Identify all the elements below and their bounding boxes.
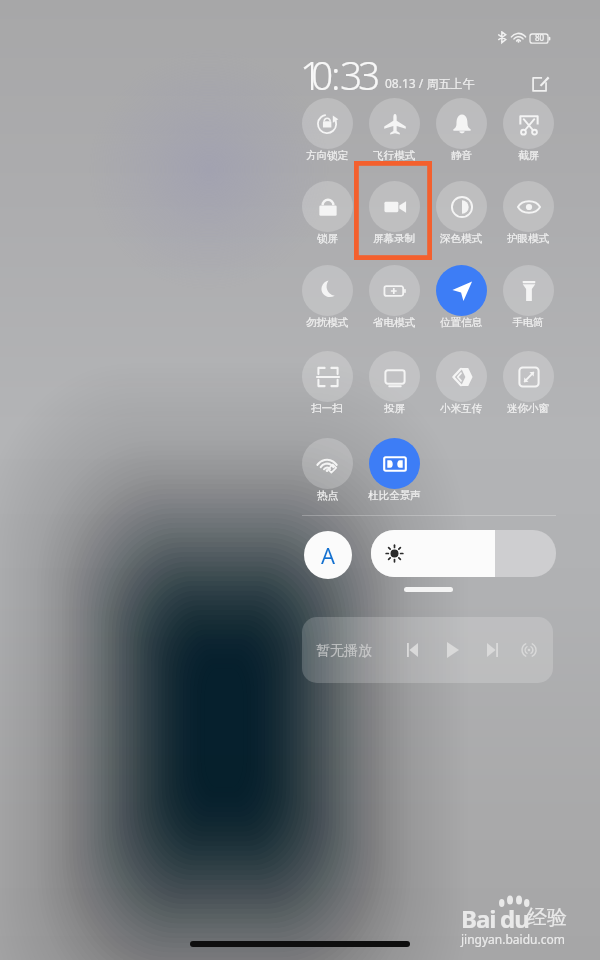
- staticText: 截屏: [518, 149, 539, 162]
- button[interactable]: [371, 530, 556, 577]
- button[interactable]: 护眼模式: [488, 177, 568, 255]
- staticText: 3: [358, 48, 381, 101]
- staticText: 省电模式: [373, 316, 415, 329]
- button[interactable]: Play: [438, 635, 468, 665]
- staticText: 1: [300, 48, 323, 101]
- button[interactable]: 小米互传: [421, 347, 501, 425]
- button[interactable]: 屏幕录制: [354, 177, 434, 255]
- staticText: 80: [535, 32, 545, 43]
- staticText: 经验: [527, 905, 567, 930]
- button[interactable]: Previous: [398, 636, 426, 664]
- button[interactable]: 扫一扫: [287, 347, 367, 425]
- staticText: 暂无播放: [316, 642, 372, 660]
- button[interactable]: 迷你小窗: [488, 347, 568, 425]
- button[interactable]: 静音: [421, 94, 501, 172]
- staticText: 08.13 / 周五上午: [385, 75, 475, 91]
- button[interactable]: Sound effects: [514, 635, 543, 664]
- button[interactable]: Edit: [528, 70, 554, 96]
- staticText: 位置信息: [440, 316, 482, 329]
- staticText: 0: [311, 48, 334, 101]
- staticText: 护眼模式: [507, 232, 549, 245]
- staticText: :: [331, 48, 341, 101]
- staticText: 3: [340, 48, 363, 101]
- staticText: 屏幕录制: [373, 232, 415, 245]
- staticText: 飞行模式: [373, 149, 415, 162]
- staticText: 小米互传: [440, 402, 482, 415]
- button[interactable]: Next: [478, 636, 506, 664]
- staticText: 勿扰模式: [306, 316, 348, 329]
- staticText: du: [500, 902, 529, 935]
- button[interactable]: 投屏: [354, 347, 434, 425]
- staticText: 方向锁定: [306, 149, 348, 162]
- staticText: jingyan.baidu.com: [461, 931, 565, 947]
- staticText: 深色模式: [440, 232, 482, 245]
- staticText: 迷你小窗: [507, 402, 549, 415]
- button[interactable]: Auto brightness: [304, 531, 352, 579]
- staticText: 杜比全景声: [368, 489, 421, 502]
- staticText: Bai: [461, 902, 496, 935]
- button[interactable]: 飞行模式: [354, 94, 434, 172]
- staticText: 手电筒: [512, 316, 544, 329]
- button[interactable]: 省电模式: [354, 261, 434, 339]
- button[interactable]: 暂无播放: [302, 617, 553, 683]
- staticText: 静音: [451, 149, 472, 162]
- button[interactable]: 热点: [287, 434, 367, 512]
- button[interactable]: 勿扰模式: [287, 261, 367, 339]
- button[interactable]: 深色模式: [421, 177, 501, 255]
- button[interactable]: 截屏: [488, 94, 568, 172]
- staticText: 锁屏: [317, 232, 338, 245]
- button[interactable]: 手电筒: [488, 261, 568, 339]
- staticText: 扫一扫: [311, 402, 343, 415]
- button[interactable]: 锁屏: [287, 177, 367, 255]
- button[interactable]: 杜比全景声: [354, 434, 434, 512]
- staticText: 热点: [317, 489, 338, 502]
- button[interactable]: 方向锁定: [287, 94, 367, 172]
- staticText: A: [321, 540, 336, 570]
- staticText: 投屏: [384, 402, 405, 415]
- button[interactable]: 位置信息: [421, 261, 501, 339]
